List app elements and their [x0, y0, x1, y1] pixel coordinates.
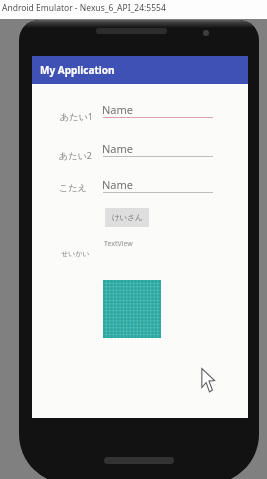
staticText: せいかい [61, 249, 90, 258]
staticText: Name [102, 177, 134, 192]
button[interactable]: My Application [32, 56, 248, 84]
staticText: TextView [104, 239, 133, 249]
button[interactable]: けいさん [105, 208, 149, 227]
staticText: Name [102, 141, 134, 156]
staticText: あたい2 [59, 149, 92, 161]
staticText: Android Emulator - Nexus_6_API_24:5554 [2, 2, 166, 14]
staticText: あたい1 [60, 110, 93, 122]
staticText: けいさん [112, 213, 143, 222]
staticText: My Application [40, 63, 115, 77]
staticText: こたえ [59, 182, 87, 193]
staticText: Name [102, 102, 134, 117]
